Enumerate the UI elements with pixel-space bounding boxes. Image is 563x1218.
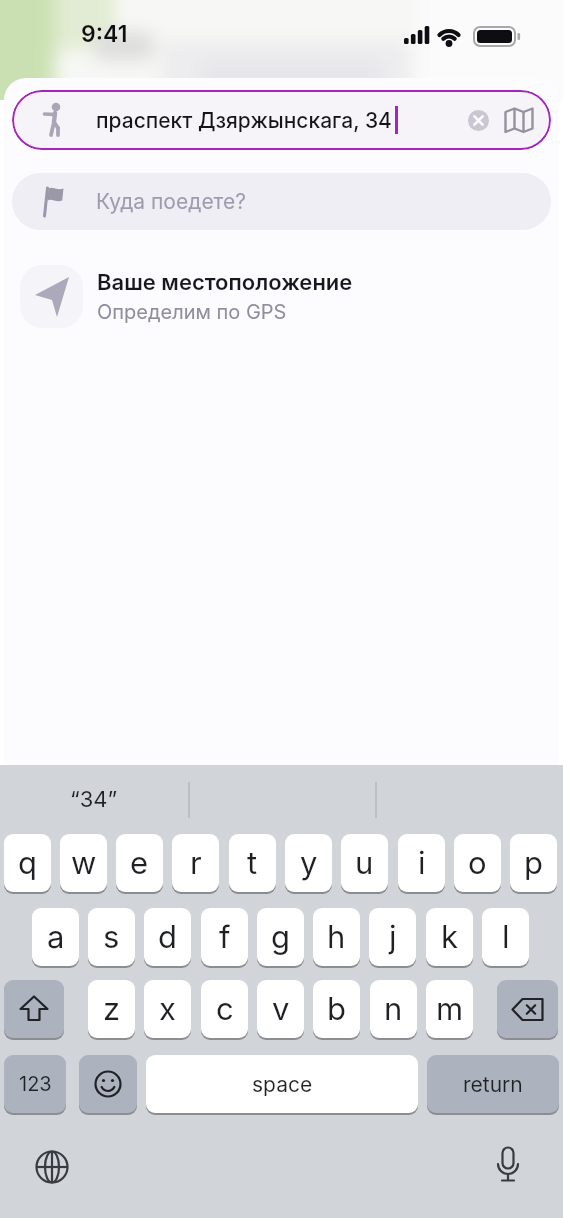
staticText: p	[524, 844, 543, 882]
button[interactable]	[504, 107, 534, 134]
button[interactable]: Ваше местоположение	[20, 265, 540, 328]
staticText: праспект Дзяржынскага, 34	[96, 108, 392, 133]
button[interactable]: x	[144, 980, 191, 1038]
button[interactable]: a	[32, 908, 79, 966]
button[interactable]: f	[201, 908, 248, 966]
staticText: h	[327, 918, 346, 956]
button[interactable]	[468, 110, 489, 131]
staticText: Определим по GPS	[97, 300, 287, 324]
button[interactable]: p	[510, 834, 557, 892]
button[interactable]	[79, 1055, 137, 1113]
button[interactable]	[497, 980, 558, 1038]
staticText: 123	[19, 1072, 52, 1096]
button[interactable]: g	[257, 908, 304, 966]
staticText: c	[216, 990, 234, 1028]
button[interactable]: d	[144, 908, 191, 966]
staticText: j	[389, 918, 397, 956]
button[interactable]: o	[454, 834, 501, 892]
button[interactable]: v	[257, 980, 304, 1038]
staticText: l	[502, 918, 510, 956]
staticText: u	[355, 844, 374, 882]
button[interactable]: e	[116, 834, 163, 892]
button[interactable]: t	[229, 834, 276, 892]
staticText: n	[384, 990, 403, 1028]
button[interactable]: space	[146, 1055, 418, 1113]
button[interactable]: i	[398, 834, 445, 892]
staticText: i	[418, 844, 426, 882]
staticText: 9:41	[81, 20, 128, 48]
button[interactable]: l	[482, 908, 529, 966]
button[interactable]	[4, 980, 64, 1038]
button[interactable]: z	[88, 980, 135, 1038]
button[interactable]	[34, 1149, 70, 1185]
staticText: v	[272, 990, 290, 1028]
staticText: r	[190, 844, 202, 882]
staticText: k	[441, 918, 459, 956]
staticText: y	[300, 844, 318, 882]
button[interactable]: m	[426, 980, 473, 1038]
staticText: a	[47, 918, 65, 956]
staticText: z	[103, 990, 121, 1028]
staticText: “34”	[70, 786, 118, 813]
staticText: return	[463, 1072, 523, 1097]
staticText: e	[130, 844, 149, 882]
button[interactable]: u	[341, 834, 388, 892]
button[interactable]: r	[172, 834, 219, 892]
staticText: t	[247, 844, 258, 882]
staticText: w	[71, 844, 97, 882]
button[interactable]: y	[285, 834, 332, 892]
button[interactable]: праспект Дзяржынскага, 34	[12, 90, 551, 150]
button[interactable]: w	[60, 834, 107, 892]
button[interactable]: q	[4, 834, 51, 892]
button[interactable]: 123	[4, 1055, 66, 1113]
staticText: m	[436, 990, 464, 1028]
staticText: q	[18, 844, 37, 882]
button[interactable]: h	[313, 908, 360, 966]
staticText: g	[271, 918, 291, 956]
staticText: o	[468, 844, 487, 882]
button[interactable]	[492, 1146, 524, 1188]
staticText: f	[219, 918, 231, 956]
button[interactable]: Куда поедете?	[12, 173, 551, 230]
button[interactable]: s	[88, 908, 135, 966]
button[interactable]: return	[427, 1055, 559, 1113]
button[interactable]: b	[313, 980, 360, 1038]
button[interactable]: j	[369, 908, 416, 966]
button[interactable]: n	[370, 980, 417, 1038]
staticText: d	[158, 918, 177, 956]
staticText: b	[327, 990, 346, 1028]
staticText: s	[103, 918, 120, 956]
staticText: Ваше местоположение	[97, 269, 353, 296]
button[interactable]: k	[426, 908, 473, 966]
staticText: Куда поедете?	[96, 189, 247, 214]
staticText: x	[159, 990, 176, 1028]
button[interactable]: c	[201, 980, 248, 1038]
staticText: space	[252, 1072, 313, 1097]
